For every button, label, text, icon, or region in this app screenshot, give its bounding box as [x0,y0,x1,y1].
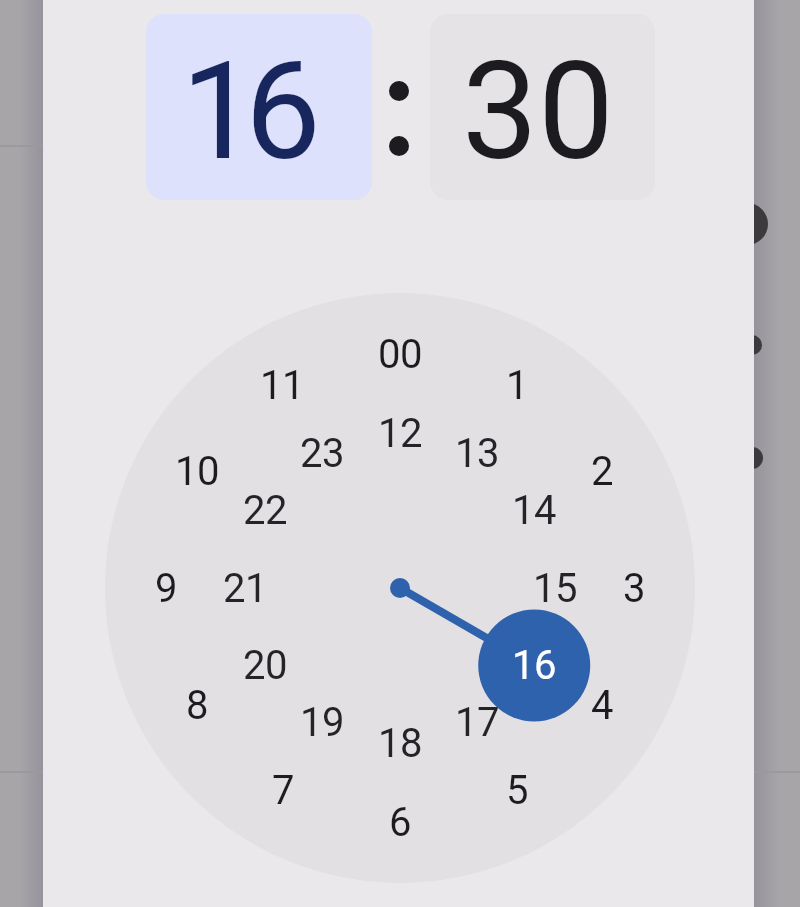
staticText: 9 [155,565,177,612]
staticText: 3 [623,565,645,612]
staticText: 8 [186,682,208,729]
button[interactable]: 6 [355,792,445,852]
button[interactable]: 4 [557,675,647,735]
button[interactable]: 23 [277,423,367,483]
button[interactable]: 14 [489,480,579,540]
staticText: 4 [591,682,613,729]
button[interactable]: 3 [589,558,679,618]
button[interactable]: 5 [472,760,562,820]
staticText: 6 [389,799,411,846]
button[interactable]: 22 [220,480,310,540]
button[interactable]: 13 [432,423,522,483]
staticText: 00 [378,331,422,378]
button[interactable]: 7 [238,760,328,820]
button[interactable] [146,14,372,200]
staticText: 23 [300,430,344,477]
button[interactable]: 21 [200,558,290,618]
staticText: 12 [378,410,422,457]
button[interactable]: 16 [489,635,579,695]
staticText: 18 [378,720,422,767]
staticText: 2 [591,448,613,495]
staticText: 14 [512,487,556,534]
staticText: 10 [175,448,219,495]
button[interactable]: 19 [277,692,367,752]
button[interactable]: 17 [432,692,522,752]
staticText: 17 [455,699,499,746]
staticText: 1 [181,33,257,191]
staticText: 0 [538,33,614,191]
staticText: 20 [243,642,287,689]
staticText: 16 [512,642,556,689]
button[interactable]: 00 [355,324,445,384]
button[interactable]: 10 [152,441,242,501]
button[interactable]: 1 [472,355,562,415]
staticText: 11 [260,362,304,409]
button[interactable]: 9 [121,558,211,618]
button[interactable]: 18 [355,713,445,773]
staticText: 19 [300,699,344,746]
button[interactable]: 2 [557,441,647,501]
button[interactable]: 15 [510,558,600,618]
staticText: 15 [533,565,577,612]
button[interactable]: 12 [355,403,445,463]
staticText: 5 [506,767,528,814]
staticText: 3 [462,33,538,191]
staticText: 22 [243,487,287,534]
staticText: 7 [272,767,294,814]
staticText: 1 [506,362,528,409]
button[interactable]: 11 [237,355,327,415]
staticText: 6 [245,33,321,191]
button[interactable]: 20 [220,635,310,695]
staticText: 21 [223,565,267,612]
button[interactable]: 8 [152,675,242,735]
button[interactable] [430,14,655,200]
staticText: 13 [455,430,499,477]
